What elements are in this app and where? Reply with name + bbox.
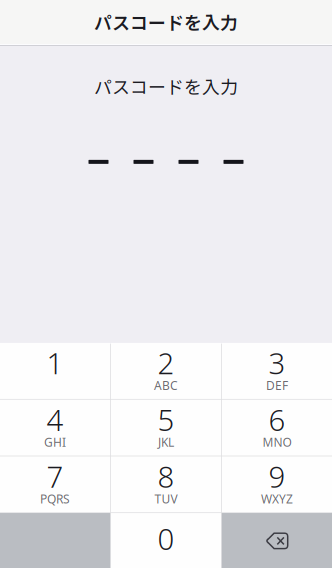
button[interactable]: 0 xyxy=(111,513,221,568)
staticText: 8 xyxy=(157,457,174,496)
staticText: 4 xyxy=(46,400,63,439)
staticText: 7 xyxy=(46,457,63,496)
staticText: 0 xyxy=(157,519,174,558)
staticText: 9 xyxy=(268,457,285,496)
staticText: JKL xyxy=(158,434,174,450)
staticText: GHI xyxy=(44,434,66,450)
staticText: パスコードを入力 xyxy=(94,9,238,35)
button[interactable]: 3 xyxy=(222,343,332,399)
button[interactable]: 5 xyxy=(111,400,221,456)
button[interactable]: 6 xyxy=(222,400,332,456)
staticText: MNO xyxy=(262,434,291,450)
staticText: パスコードを入力 xyxy=(94,73,238,99)
button[interactable]: 7 xyxy=(0,456,110,512)
staticText: 6 xyxy=(268,400,285,439)
staticText: 5 xyxy=(157,400,174,439)
staticText: WXYZ xyxy=(261,491,293,507)
button[interactable]: Delete xyxy=(222,513,332,568)
staticText: PQRS xyxy=(40,491,70,507)
button[interactable]: 4 xyxy=(0,400,110,456)
staticText: 1 xyxy=(46,343,63,382)
staticText: TUV xyxy=(154,491,177,507)
button[interactable]: 8 xyxy=(111,456,221,512)
staticText: DEF xyxy=(266,377,288,393)
staticText: ABC xyxy=(154,377,178,393)
button[interactable]: 2 xyxy=(111,343,221,399)
staticText: 2 xyxy=(157,343,174,382)
button[interactable]: 9 xyxy=(222,456,332,512)
staticText: 3 xyxy=(268,343,285,382)
button[interactable]: 1 xyxy=(0,343,110,399)
